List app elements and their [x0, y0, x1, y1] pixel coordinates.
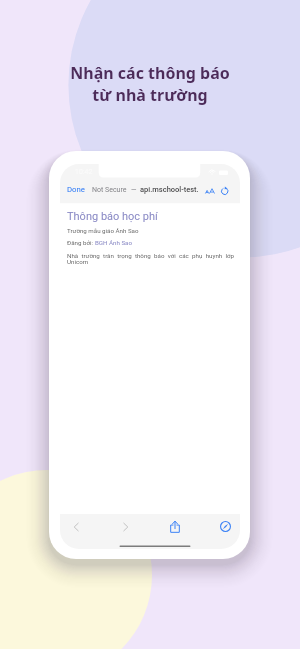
- staticText: Thông báo học phí: [67, 210, 158, 223]
- staticText: Đăng bởi:: [67, 239, 95, 246]
- button[interactable]: Safari: [219, 520, 232, 533]
- staticText: Not Secure: [92, 186, 127, 194]
- button[interactable]: BGH Ánh Sao: [95, 239, 132, 246]
- staticText: —: [131, 186, 137, 194]
- button[interactable]: Text size: [205, 185, 216, 196]
- button[interactable]: Forward: [120, 522, 130, 532]
- staticText: Nhận các thông báo từ nhà trường: [0, 62, 300, 106]
- staticText: Trường mẫu giáo Ánh Sao: [67, 227, 139, 234]
- button[interactable]: Reload: [221, 185, 232, 197]
- staticText: Nhà trường trân trọng thông báo với các …: [67, 252, 234, 266]
- button[interactable]: Share: [169, 520, 181, 534]
- button[interactable]: Back: [72, 522, 82, 532]
- button[interactable]: Done: [67, 185, 86, 194]
- button[interactable]: api.mschool-test.: [140, 185, 199, 194]
